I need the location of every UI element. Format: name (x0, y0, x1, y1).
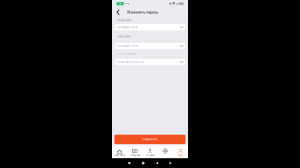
staticText: Новый пароль (117, 35, 131, 38)
staticText: Мой Теле2 (115, 154, 125, 157)
staticText: 4:42 (125, 2, 129, 5)
staticText: Новый пароль ещё раз (116, 60, 143, 63)
staticText: Обязательное поле (116, 26, 137, 29)
staticText: От 6 до 20 символов (117, 53, 136, 55)
staticText: Открытия (130, 154, 140, 157)
button[interactable] (158, 145, 173, 158)
staticText: Ещё (178, 154, 182, 157)
button[interactable]: Back (115, 7, 122, 17)
button[interactable]: Обязательное поле (114, 42, 186, 49)
staticText: Изменить пароль (127, 10, 158, 14)
button[interactable]: Сохранить (114, 135, 186, 144)
button[interactable]: Ещё (173, 145, 188, 158)
button[interactable]: Новый пароль ещё раз (114, 58, 186, 65)
button[interactable]: Мой Теле2 (112, 145, 127, 158)
button[interactable]: Обязательное поле (114, 24, 186, 31)
button[interactable]: Из дома (142, 145, 158, 158)
staticText: Из дома (145, 154, 154, 157)
button[interactable]: Открытия (127, 145, 142, 158)
staticText: Обязательное поле (116, 44, 137, 47)
staticText: Текущий пароль (117, 19, 132, 22)
staticText: Сохранить (142, 138, 158, 141)
